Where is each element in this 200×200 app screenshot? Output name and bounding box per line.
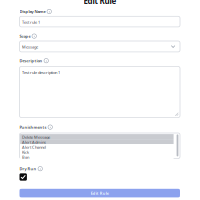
staticText: Message [22,44,38,50]
button[interactable]: Dry Run [19,173,27,181]
staticText: Test rule description 1 [22,70,60,75]
staticText: Edit Rule [91,190,109,196]
staticText: Display Name [19,9,45,14]
button[interactable]: Delete Message [19,133,180,158]
staticText: Edit Rule [83,0,116,6]
button[interactable]: Message [19,41,180,52]
button[interactable]: Test rule description 1 [19,66,180,117]
staticText: Alert Admins [22,139,46,145]
button[interactable]: Edit Rule [19,189,180,197]
staticText: Description [19,58,42,63]
staticText: Scope [19,33,30,39]
staticText: Punishments [19,124,46,130]
staticText: Ban [22,154,29,160]
staticText: Test rule 1 [22,19,40,25]
staticText: Alert Channel [22,144,46,150]
staticText: Delete Message [22,134,50,140]
button[interactable]: Test rule 1 [19,16,180,27]
staticText: Dry Run [19,166,36,171]
staticText: Kick [22,149,29,155]
